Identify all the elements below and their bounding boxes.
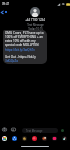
- button[interactable]: Back: [0, 9, 7, 16]
- staticText: 3dGQzZa: [5, 59, 18, 63]
- staticText: 09:47: [2, 2, 10, 6]
- button[interactable]: Text Message: [22, 128, 58, 133]
- button[interactable]: Photos: [2, 136, 7, 141]
- button[interactable]: TikTok: [62, 136, 67, 141]
- staticText: Text Message: [27, 23, 44, 27]
- staticText: Today 10:15: [28, 27, 43, 31]
- staticText: https://bit.ly/3wQhTv: [5, 48, 35, 52]
- button[interactable]: Gallery: [22, 136, 27, 141]
- button[interactable]: Camera: [2, 127, 7, 132]
- button[interactable]: Play Store: [12, 136, 17, 141]
- button[interactable]: Photo: [42, 136, 47, 141]
- staticText: +44 7700 1234: [25, 18, 45, 22]
- button[interactable]: OMG Coors, PLT have up to 100% off EVERY…: [3, 30, 47, 64]
- button[interactable]: Contact avatar: [30, 7, 40, 17]
- button[interactable]: Gallery: [11, 127, 16, 132]
- button[interactable]: YouTube: [32, 136, 37, 141]
- staticText: Get Out - https://bit.ly: [5, 55, 36, 59]
- button[interactable]: Messages: [52, 136, 57, 141]
- staticText: Text Message: [26, 129, 43, 133]
- staticText: OMG Coors, PLT have up to 100% off EVERY…: [5, 31, 45, 47]
- button[interactable]: Send: [61, 129, 64, 132]
